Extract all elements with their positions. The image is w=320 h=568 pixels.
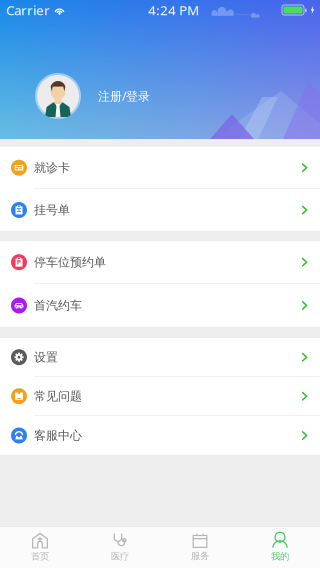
staticText: 4:24 PM — [148, 1, 199, 19]
staticText: 设置 — [34, 350, 58, 364]
staticText: 医疗 — [111, 551, 129, 562]
staticText: 挂号单 — [34, 203, 70, 217]
staticText: 我的 — [271, 551, 289, 562]
staticText: Carrier — [6, 1, 50, 19]
button[interactable]: 设置 — [0, 338, 320, 377]
staticText: 首页 — [31, 551, 49, 562]
staticText: 注册/登录 — [98, 88, 150, 104]
button[interactable]: 医疗 — [80, 527, 160, 568]
button[interactable]: 停车位预约单 — [0, 241, 320, 284]
staticText: 常见问题 — [34, 389, 82, 403]
button[interactable]: 挂号单 — [0, 189, 320, 231]
button[interactable]: 客服中心 — [0, 416, 320, 455]
staticText: 客服中心 — [34, 428, 82, 443]
staticText: 停车位预约单 — [34, 255, 106, 269]
button[interactable]: 首汽约车 — [0, 284, 320, 327]
button[interactable]: 常见问题 — [0, 377, 320, 416]
button[interactable]: 服务 — [160, 527, 240, 568]
button[interactable]: 首页 — [0, 527, 80, 568]
staticText: 就诊卡 — [34, 160, 70, 175]
button[interactable]: 就诊卡 — [0, 147, 320, 189]
button[interactable]: 我的 — [240, 527, 320, 568]
staticText: 首汽约车 — [34, 298, 82, 313]
staticText: 服务 — [191, 550, 209, 562]
